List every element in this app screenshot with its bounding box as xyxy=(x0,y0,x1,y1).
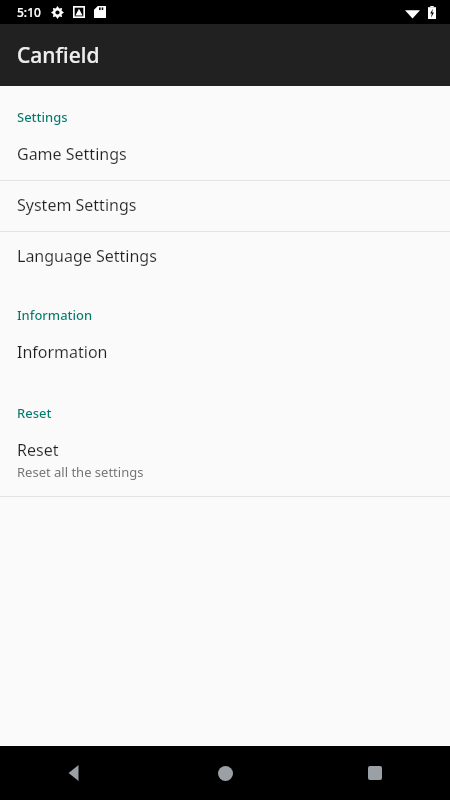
staticText: Reset xyxy=(17,439,59,461)
button[interactable]: Home xyxy=(150,746,300,800)
staticText: Reset all the settings xyxy=(17,463,144,481)
staticText: Settings xyxy=(17,108,68,126)
staticText: System Settings xyxy=(17,194,137,216)
button[interactable]: Information xyxy=(0,328,450,378)
staticText: Language Settings xyxy=(17,245,157,267)
button[interactable]: Recent apps xyxy=(300,746,450,800)
button[interactable]: Language Settings xyxy=(0,232,450,282)
staticText: Game Settings xyxy=(17,143,127,165)
button[interactable]: Back xyxy=(0,746,150,800)
staticText: Reset xyxy=(17,404,52,422)
staticText: Canfield xyxy=(17,41,100,70)
staticText: 5:10 xyxy=(17,4,41,20)
button[interactable]: Reset xyxy=(0,426,450,496)
staticText: Information xyxy=(17,341,108,363)
button[interactable]: System Settings xyxy=(0,181,450,231)
staticText: Information xyxy=(17,306,93,324)
button[interactable]: Game Settings xyxy=(0,130,450,180)
